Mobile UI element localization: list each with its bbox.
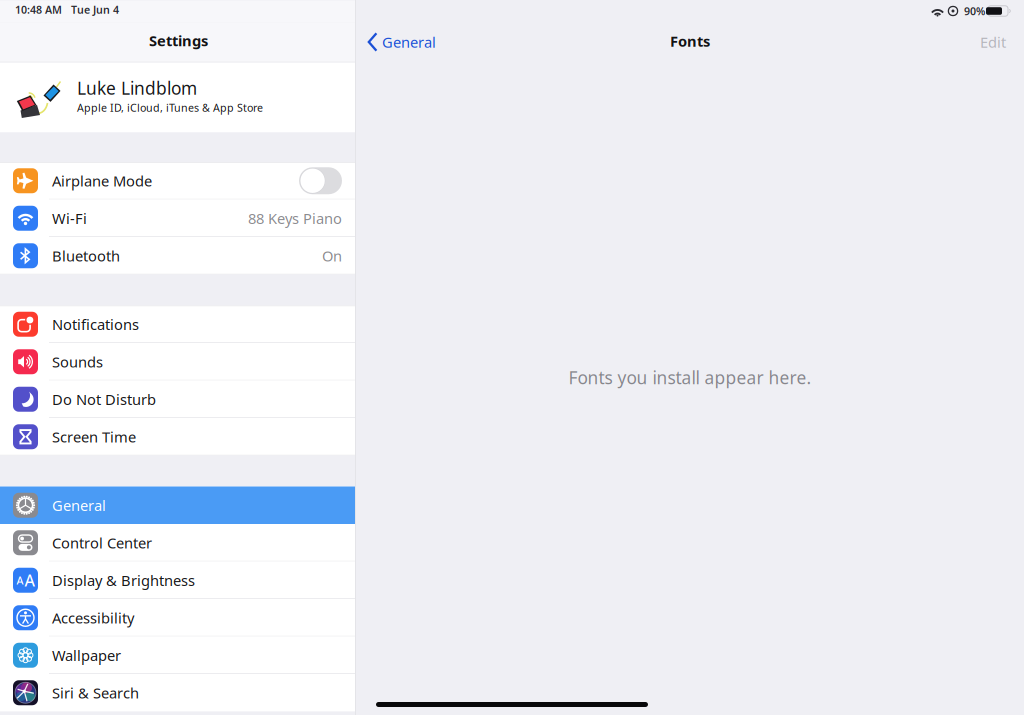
staticText: Edit [980, 32, 1006, 52]
staticText: On [322, 246, 342, 265]
staticText: Luke Lindblom [77, 76, 197, 99]
staticText: A [24, 570, 34, 591]
button[interactable]: Wi-Fi [0, 199, 355, 237]
staticText: Notifications [52, 314, 139, 334]
staticText: 90% [964, 4, 985, 18]
staticText: Fonts you install appear here. [568, 366, 811, 389]
staticText: Settings [149, 31, 208, 50]
button[interactable]: Do Not Disturb [0, 380, 355, 418]
staticText: Bluetooth [52, 246, 120, 265]
staticText: Wi-Fi [52, 208, 87, 228]
button[interactable]: General [0, 486, 355, 524]
button[interactable]: Notifications [0, 305, 355, 343]
staticText: Fonts [670, 31, 710, 51]
staticText: General [382, 32, 436, 52]
button[interactable]: Bluetooth [0, 237, 355, 274]
staticText: 88 Keys Piano [248, 208, 342, 228]
staticText: Display & Brightness [52, 570, 195, 590]
staticText: Accessibility [52, 608, 134, 627]
staticText: Apple ID, iCloud, iTunes & App Store [77, 100, 263, 115]
staticText: A [16, 573, 23, 587]
staticText: Siri & Search [52, 683, 139, 702]
button[interactable]: Screen Time [0, 418, 355, 455]
button[interactable]: Luke Lindblom [0, 62, 355, 132]
button[interactable]: Wallpaper [0, 636, 355, 674]
button[interactable]: Control Center [0, 524, 355, 561]
staticText: Sounds [52, 352, 103, 371]
button[interactable]: Airplane Mode [0, 162, 355, 199]
staticText: 10:48 AM [15, 2, 62, 17]
button[interactable]: Siri & Search [0, 674, 355, 711]
staticText: Control Center [52, 533, 152, 552]
staticText: Screen Time [52, 427, 136, 446]
staticText: Tue Jun 4 [71, 2, 119, 17]
button[interactable]: A [0, 561, 355, 599]
button[interactable]: Sounds [0, 343, 355, 380]
staticText: Do Not Disturb [52, 389, 156, 409]
button[interactable]: General [356, 24, 436, 60]
staticText: General [52, 495, 106, 515]
button[interactable]: Edit [980, 24, 1024, 60]
staticText: Wallpaper [52, 645, 121, 665]
button[interactable]: Accessibility [0, 599, 355, 636]
staticText: Airplane Mode [52, 171, 152, 190]
